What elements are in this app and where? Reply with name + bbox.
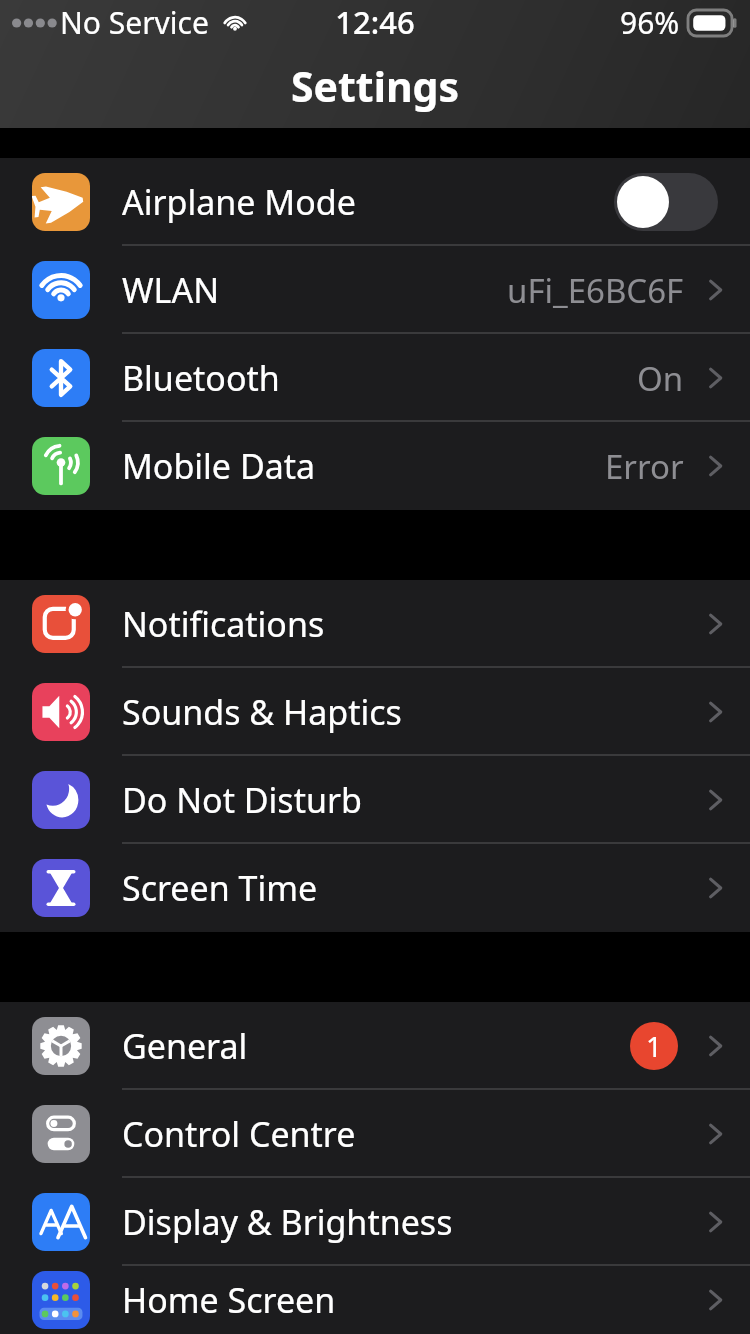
button[interactable]: Screen Time (0, 844, 750, 932)
staticText: Screen Time (122, 865, 318, 911)
staticText: Home Screen (122, 1277, 336, 1323)
button[interactable]: Bluetooth (0, 334, 750, 422)
button[interactable]: Airplane Mode toggle (614, 173, 718, 231)
button[interactable]: WLAN (0, 246, 750, 334)
staticText: Notifications (122, 601, 325, 647)
button[interactable]: Sounds & Haptics (0, 668, 750, 756)
staticText: Airplane Mode (122, 179, 356, 225)
staticText: Bluetooth (122, 355, 280, 401)
staticText: Error (605, 444, 684, 489)
staticText: Do Not Disturb (122, 777, 362, 823)
staticText: Display & Brightness (122, 1199, 453, 1245)
button[interactable]: Notifications (0, 580, 750, 668)
button[interactable]: Mobile Data (0, 422, 750, 510)
button[interactable]: Control Centre (0, 1090, 750, 1178)
staticText: 96% (620, 2, 680, 43)
staticText: 12:46 (335, 1, 415, 43)
staticText: No Service (60, 2, 209, 43)
button[interactable]: Display & Brightness (0, 1178, 750, 1266)
staticText: WLAN (122, 267, 220, 313)
staticText: Mobile Data (122, 443, 316, 489)
staticText: uFi_E6BC6F (507, 268, 684, 313)
staticText: General (122, 1023, 248, 1069)
button[interactable]: Airplane Mode (0, 158, 750, 246)
button[interactable]: General (0, 1002, 750, 1090)
staticText: On (637, 356, 684, 401)
button[interactable]: Home Screen (0, 1266, 750, 1334)
button[interactable]: Do Not Disturb (0, 756, 750, 844)
staticText: Sounds & Haptics (122, 689, 402, 735)
staticText: Settings (291, 58, 460, 114)
staticText: 1 (646, 1027, 663, 1065)
staticText: Control Centre (122, 1111, 356, 1157)
